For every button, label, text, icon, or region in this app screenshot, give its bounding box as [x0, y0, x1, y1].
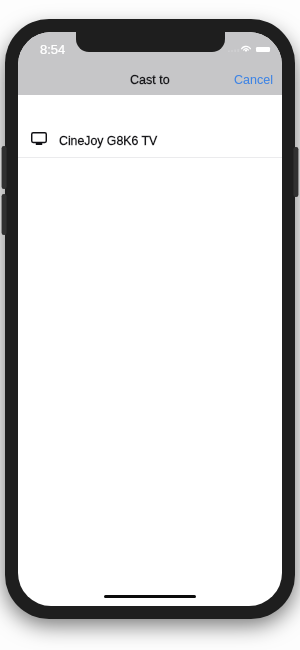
- button[interactable]: Volume up: [1, 146, 7, 189]
- button[interactable]: CineJoy G8K6 TV: [18, 95, 282, 157]
- staticText: Cancel: [234, 73, 273, 87]
- button[interactable]: Cancel: [224, 62, 279, 96]
- button[interactable]: Power: [293, 147, 299, 197]
- button[interactable]: Volume down: [1, 194, 7, 235]
- staticText: Cast to: [130, 73, 170, 87]
- staticText: 8:54: [40, 42, 66, 57]
- staticText: CineJoy G8K6 TV: [59, 134, 158, 148]
